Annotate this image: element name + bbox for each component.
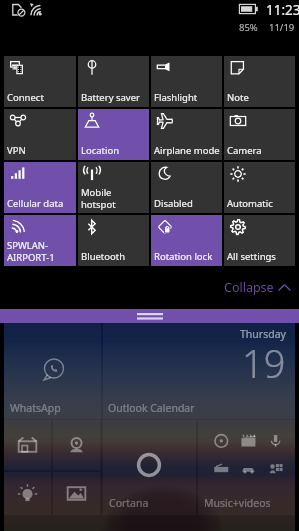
staticText: Note bbox=[227, 91, 249, 104]
staticText: 11/19 bbox=[269, 21, 295, 34]
button[interactable]: Camera bbox=[224, 109, 295, 160]
button[interactable]: Airplane mode bbox=[151, 109, 222, 160]
button[interactable]: Location bbox=[78, 109, 149, 160]
staticText: Flashlight bbox=[154, 91, 198, 104]
staticText: Connect bbox=[7, 91, 44, 104]
button[interactable]: VPN bbox=[4, 109, 76, 160]
button[interactable]: Bluetooth bbox=[78, 215, 149, 266]
button[interactable]: Connect bbox=[4, 56, 76, 107]
staticText: Rotation lock bbox=[154, 250, 213, 263]
staticText: 11:23 bbox=[266, 1, 299, 19]
button[interactable]: Mobile hotspot bbox=[78, 162, 149, 213]
staticText: Cortana bbox=[109, 496, 149, 510]
staticText: Thursday bbox=[240, 327, 286, 341]
staticText: 19 bbox=[242, 337, 286, 389]
button[interactable]: Thursday bbox=[103, 323, 295, 419]
button[interactable]: Collapse bbox=[224, 279, 291, 296]
button[interactable]: Battery saver bbox=[78, 56, 149, 107]
button[interactable]: WhatsApp bbox=[4, 323, 101, 419]
button[interactable]: Cortana bbox=[103, 420, 196, 515]
staticText: All settings bbox=[227, 250, 276, 263]
button[interactable]: Flashlight bbox=[151, 56, 222, 107]
button[interactable]: SPWLAN- AIRPORT-1 bbox=[4, 215, 76, 266]
staticText: SPWLAN- AIRPORT-1 bbox=[7, 239, 55, 263]
button[interactable]: App tile bbox=[4, 420, 51, 470]
staticText: Mobile hotspot bbox=[81, 186, 116, 210]
staticText: Disabled bbox=[154, 197, 193, 210]
staticText: Location bbox=[81, 144, 120, 157]
button[interactable]: App tile bbox=[53, 420, 100, 470]
staticText: WhatsApp bbox=[10, 401, 61, 415]
button[interactable]: Drag handle bbox=[0, 309, 299, 323]
staticText: Airplane mode bbox=[154, 144, 220, 157]
staticText: Battery saver bbox=[81, 91, 140, 104]
staticText: VPN bbox=[7, 144, 26, 157]
button[interactable]: Automatic bbox=[224, 162, 295, 213]
staticText: Bluetooth bbox=[81, 250, 126, 263]
button[interactable]: App tile bbox=[53, 472, 100, 515]
staticText: Automatic bbox=[227, 197, 273, 210]
staticText: Camera bbox=[227, 144, 262, 157]
staticText: Music+videos bbox=[204, 496, 271, 510]
button[interactable]: Disabled bbox=[151, 162, 222, 213]
staticText: Cellular data bbox=[7, 197, 64, 210]
button[interactable]: All settings bbox=[224, 215, 295, 266]
button[interactable]: Cellular data bbox=[4, 162, 76, 213]
button[interactable]: Rotation lock bbox=[151, 215, 222, 266]
button[interactable]: App tile bbox=[4, 472, 51, 515]
button[interactable]: Note bbox=[224, 56, 295, 107]
button[interactable]: Music+videos bbox=[198, 420, 295, 515]
staticText: Outlook Calendar bbox=[108, 401, 195, 415]
staticText: 85% bbox=[239, 21, 258, 34]
staticText: Collapse bbox=[224, 279, 274, 296]
